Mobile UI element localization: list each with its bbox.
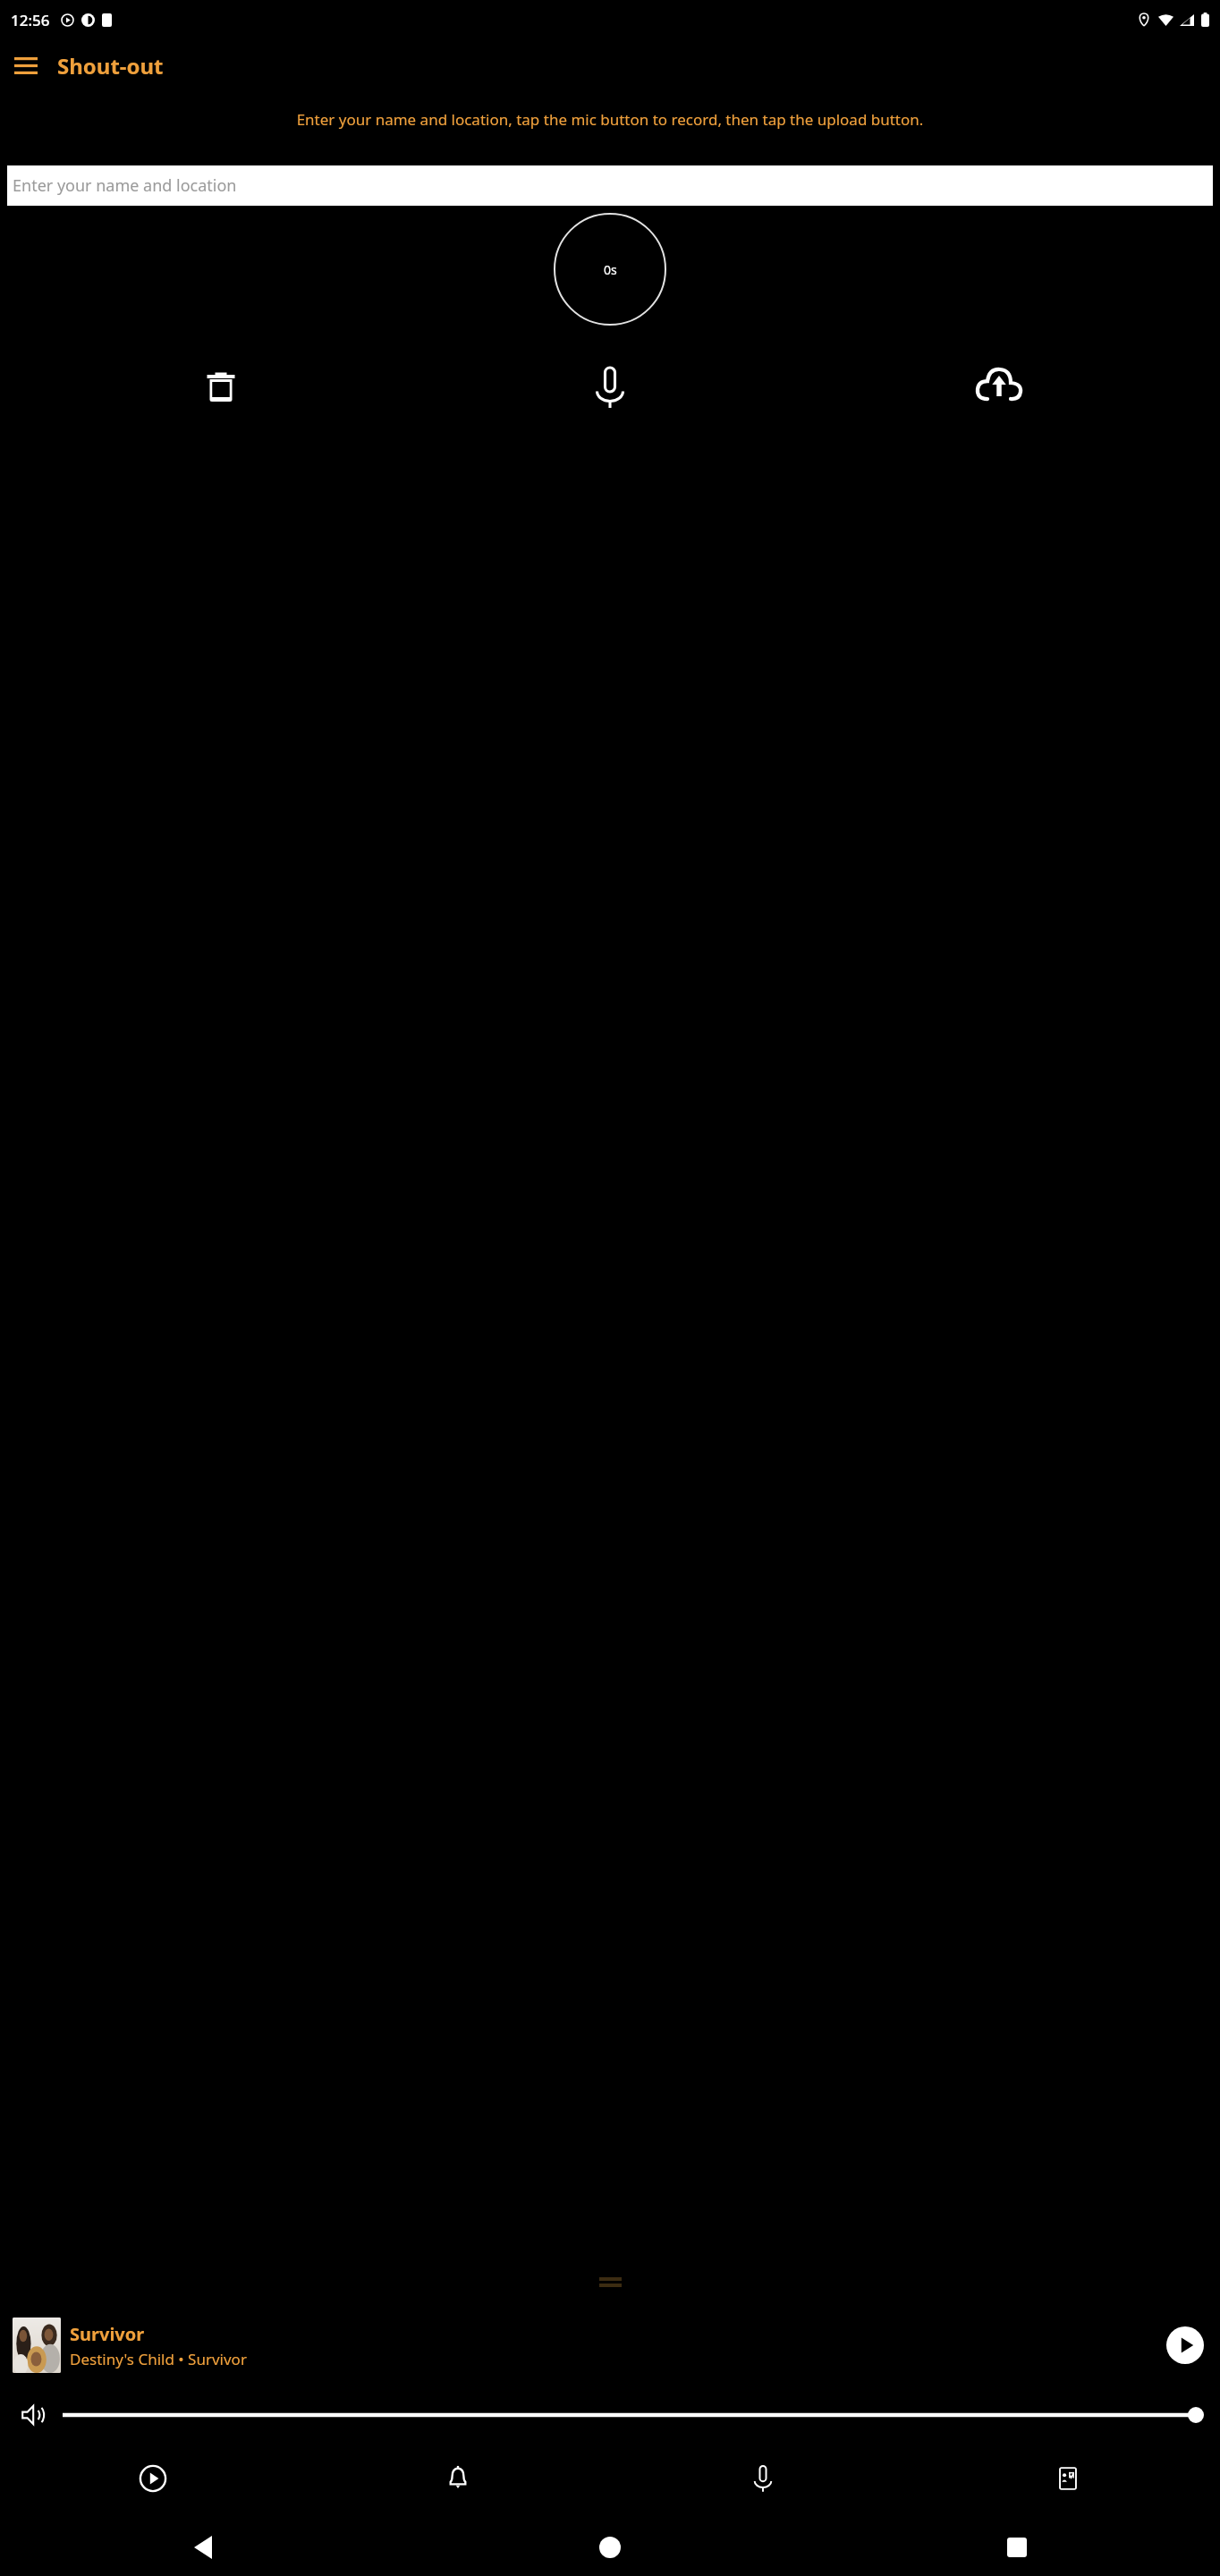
staticText: Enter your name and location	[13, 174, 237, 197]
button[interactable]: Enter your name and location	[7, 165, 1213, 206]
button[interactable]: 0s	[554, 213, 666, 326]
button[interactable]: Recents	[813, 2519, 1220, 2576]
staticText: Survivor	[70, 2322, 145, 2346]
button[interactable]: Volume	[16, 2397, 54, 2433]
button[interactable]: Record	[415, 354, 804, 420]
button[interactable]: Upload	[804, 354, 1193, 420]
button[interactable]: Record	[610, 2451, 915, 2506]
staticText: 12:56	[11, 10, 50, 30]
button[interactable]: Volume slider	[63, 2399, 1204, 2431]
button[interactable]: Notifications	[305, 2451, 610, 2506]
button[interactable]: Survivor	[0, 2315, 1220, 2376]
staticText: 0s	[604, 261, 617, 278]
button[interactable]: Play	[0, 2451, 305, 2506]
button[interactable]: Back	[0, 2519, 406, 2576]
button[interactable]: Contact	[915, 2451, 1220, 2506]
button[interactable]: Home	[406, 2519, 813, 2576]
button[interactable]: Menu	[5, 45, 47, 86]
button[interactable]: Play	[1163, 2323, 1207, 2368]
button[interactable]: Delete recording	[27, 354, 415, 420]
staticText: Enter your name and location, tap the mi…	[14, 109, 1206, 130]
staticText: Destiny's Child • Survivor	[70, 2349, 247, 2369]
staticText: Shout-out	[57, 51, 164, 80]
